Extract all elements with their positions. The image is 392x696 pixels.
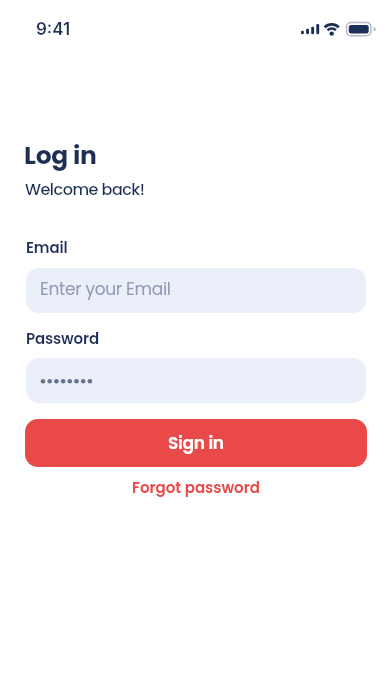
staticText: Welcome back! <box>25 178 145 200</box>
staticText: Email <box>26 237 68 258</box>
button[interactable] <box>26 358 366 403</box>
staticText: Enter your Email <box>40 277 171 301</box>
button[interactable]: Enter your Email <box>26 268 366 313</box>
staticText: Sign in <box>168 431 224 455</box>
button[interactable]: Sign in <box>25 419 367 467</box>
staticText: Forgot password <box>132 477 260 498</box>
staticText: 9:41 <box>36 19 71 40</box>
staticText: Password <box>26 328 99 349</box>
button[interactable]: Forgot password <box>132 477 260 498</box>
staticText: Log in <box>24 138 97 173</box>
